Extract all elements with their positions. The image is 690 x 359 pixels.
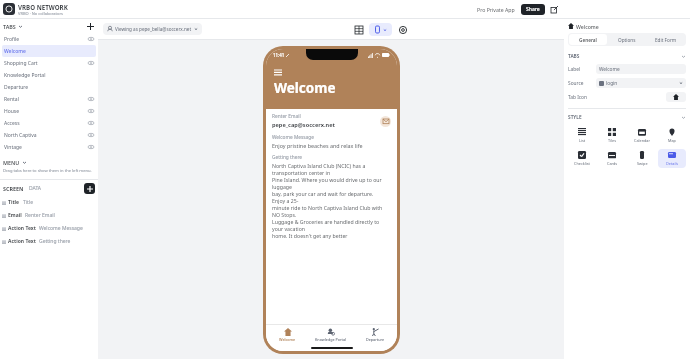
staticText: Email — [8, 212, 22, 219]
button[interactable]: Grid view — [352, 23, 365, 36]
staticText: SCREEN — [3, 185, 24, 192]
staticText: Enjoy a 25- — [272, 197, 299, 204]
staticText: Checklist — [574, 161, 590, 166]
staticText: Departure — [366, 337, 385, 342]
staticText: bay, park your car and wait for departur… — [272, 190, 374, 197]
staticText: pepe_cap@soccerx.net — [272, 121, 335, 129]
staticText: Pine Island. Where you would drive up to… — [272, 176, 382, 183]
button[interactable]: Menu — [274, 67, 284, 77]
staticText: Label — [568, 66, 581, 73]
staticText: Luggage & Groceries are handled directly… — [272, 218, 380, 225]
staticText: List — [579, 138, 586, 143]
button[interactable]: Knowledge Portal — [2, 69, 96, 81]
button[interactable]: TABS — [568, 51, 686, 61]
staticText: login — [606, 80, 618, 87]
button[interactable]: Add tab — [85, 21, 95, 31]
staticText: Source — [568, 80, 584, 87]
staticText: home. It doesn't get any better — [272, 232, 348, 239]
staticText: Action Text — [8, 225, 36, 232]
staticText: 11:41 — [273, 52, 285, 58]
staticText: Details — [666, 161, 679, 166]
staticText: Welcome — [599, 66, 620, 73]
staticText: Swipe — [637, 161, 648, 166]
staticText: Welcome Message — [272, 134, 314, 141]
staticText: Title — [8, 199, 20, 206]
staticText: VRBO NETWORK — [18, 3, 68, 11]
staticText: Departure — [4, 84, 29, 91]
button[interactable] — [369, 23, 392, 36]
button[interactable]: Shopping Cart — [2, 57, 96, 69]
staticText: Tab Icon — [568, 94, 587, 101]
button[interactable]: House — [2, 105, 96, 117]
button[interactable]: North Captiva — [2, 129, 96, 141]
button[interactable]: Action Text — [2, 222, 95, 235]
button[interactable]: Departure — [2, 81, 96, 93]
button[interactable]: List — [568, 126, 596, 145]
button[interactable]: Edit Form — [646, 34, 685, 45]
button[interactable]: Map — [658, 126, 686, 145]
staticText: Title — [23, 199, 33, 206]
staticText: TABS — [568, 53, 580, 60]
button[interactable]: Action Text — [2, 235, 95, 248]
button[interactable]: Open in new window — [549, 4, 559, 14]
staticText: Getting there — [39, 238, 71, 245]
staticText: Enjoy pristine beaches and relax life — [272, 142, 363, 149]
button[interactable]: Rental — [2, 93, 96, 105]
staticText: Viewing as pepe_bella@soccerx.net — [115, 26, 192, 32]
button[interactable]: Welcome — [266, 325, 309, 345]
button[interactable]: Settings — [396, 23, 409, 36]
button[interactable]: Knowledge Portal — [309, 325, 353, 345]
staticText: Welcome — [274, 79, 336, 97]
staticText: North Captiva — [4, 132, 37, 139]
staticText: Map — [668, 138, 676, 143]
button[interactable]: Swipe — [628, 149, 656, 168]
button[interactable]: Email — [380, 116, 391, 127]
button[interactable]: Options — [607, 34, 646, 45]
staticText: Rental — [4, 96, 19, 103]
staticText: Options — [618, 37, 636, 43]
button[interactable]: login — [596, 78, 686, 88]
button[interactable]: Email — [2, 209, 95, 222]
button[interactable]: Profile — [2, 33, 96, 45]
staticText: Welcome — [279, 337, 296, 342]
staticText: Pro Private App — [477, 6, 515, 13]
staticText: General — [579, 37, 597, 43]
button[interactable]: Calendar — [628, 126, 656, 145]
button[interactable]: Access — [2, 117, 96, 129]
button[interactable]: General — [569, 34, 607, 45]
button[interactable]: Departure — [353, 325, 397, 345]
staticText: Renter Email — [272, 113, 301, 120]
button[interactable]: Title — [2, 196, 95, 209]
staticText: luggage — [272, 183, 292, 190]
staticText: Drag tabs here to show them in the left … — [3, 168, 92, 174]
button[interactable]: Share — [521, 4, 545, 15]
staticText: TABS — [3, 23, 16, 30]
staticText: Welcome — [576, 23, 599, 30]
staticText: Knowledge Portal — [315, 337, 347, 342]
staticText: House — [4, 108, 20, 115]
button[interactable]: Welcome — [596, 64, 686, 74]
staticText: Vintage — [4, 144, 22, 151]
staticText: Cards — [607, 161, 618, 166]
staticText: Tiles — [608, 138, 617, 143]
staticText: Edit Form — [655, 37, 677, 43]
staticText: transportation center in — [272, 169, 331, 176]
button[interactable]: Welcome — [2, 45, 96, 57]
button[interactable]: Checklist — [568, 149, 596, 168]
staticText: Access — [4, 120, 20, 127]
button[interactable]: Choose tab icon — [666, 92, 686, 102]
staticText: DATA — [29, 185, 42, 192]
staticText: Welcome Message — [39, 225, 83, 232]
staticText: Share — [526, 6, 540, 13]
button[interactable]: Add component — [84, 183, 95, 194]
button[interactable]: Details — [658, 149, 686, 168]
button[interactable]: Tiles — [598, 126, 626, 145]
staticText: Renter Email — [25, 212, 55, 219]
button[interactable]: Cards — [598, 149, 626, 168]
button[interactable]: Vintage — [2, 141, 96, 153]
button[interactable]: Viewing as pepe_bella@soccerx.net — [103, 23, 202, 35]
staticText: Action Text — [8, 238, 36, 245]
staticText: VRBO · No collaborators — [18, 11, 64, 16]
button[interactable]: STYLE — [568, 112, 686, 122]
staticText: Knowledge Portal — [4, 72, 46, 79]
